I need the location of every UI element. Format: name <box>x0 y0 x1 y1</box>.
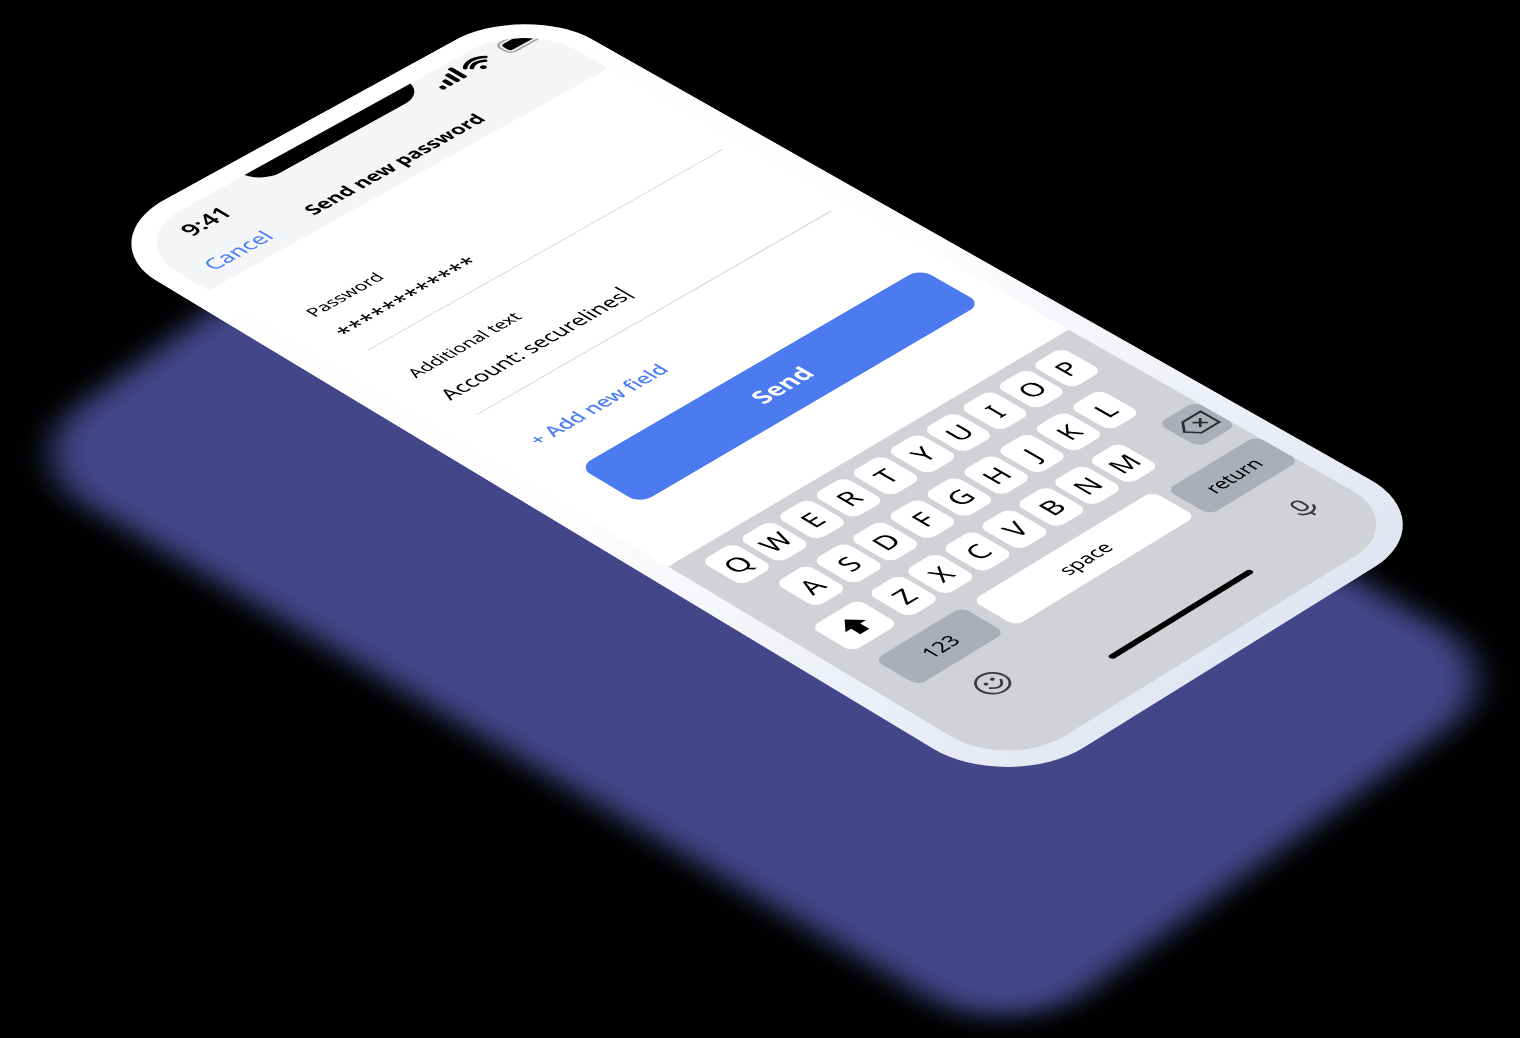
staticText: K <box>1046 419 1092 445</box>
button[interactable]: H <box>960 454 1033 497</box>
button[interactable]: Backspace <box>1157 401 1237 448</box>
staticText: O <box>1007 375 1057 404</box>
button[interactable]: X <box>903 552 977 596</box>
staticText: I <box>975 399 1015 423</box>
staticText: Y <box>901 441 945 467</box>
staticText: A <box>788 572 835 600</box>
button[interactable]: M <box>1087 442 1160 485</box>
button[interactable]: F <box>886 498 959 541</box>
staticText: 9:41 <box>171 201 240 240</box>
button[interactable]: Cancel <box>195 226 280 274</box>
button[interactable]: Send <box>579 268 982 504</box>
staticText: Account: securelines <box>431 287 635 404</box>
button[interactable]: R <box>812 476 885 519</box>
button[interactable]: W <box>738 520 811 564</box>
staticText: return <box>1197 453 1270 497</box>
staticText: space <box>1050 537 1120 579</box>
staticText: Q <box>713 549 763 579</box>
staticText: C <box>954 538 1001 566</box>
staticText: P <box>1044 355 1090 381</box>
staticText: M <box>1098 448 1151 479</box>
button[interactable]: Emoji <box>958 662 1027 704</box>
button[interactable]: E <box>775 498 849 541</box>
staticText: N <box>1063 471 1112 500</box>
staticText: G <box>936 483 984 511</box>
staticText: V <box>992 516 1038 543</box>
button[interactable]: V <box>978 507 1051 551</box>
staticText: Send new password <box>296 109 491 218</box>
button[interactable]: I <box>959 390 1031 432</box>
button[interactable]: K <box>1032 410 1105 453</box>
staticText: R <box>826 484 872 512</box>
button[interactable]: space <box>972 491 1196 626</box>
staticText: S <box>827 550 871 577</box>
staticText: + Add new field <box>520 359 675 449</box>
button[interactable]: Dictate <box>1267 486 1341 530</box>
button[interactable]: S <box>812 541 885 585</box>
button[interactable]: C <box>941 530 1014 573</box>
button[interactable]: O <box>995 368 1067 410</box>
button[interactable]: P <box>1031 347 1103 389</box>
button[interactable]: Z <box>867 574 941 618</box>
staticText: X <box>918 560 964 587</box>
button[interactable]: return <box>1166 436 1300 515</box>
staticText: Additional text <box>401 308 527 381</box>
button[interactable]: D <box>848 520 922 563</box>
button[interactable]: U <box>922 411 995 454</box>
button[interactable]: T <box>849 454 922 497</box>
staticText: Password <box>300 269 390 320</box>
staticText: ************ <box>327 252 487 342</box>
button[interactable]: Shift <box>810 599 899 652</box>
staticText: W <box>749 526 802 558</box>
button[interactable]: J <box>996 432 1068 475</box>
button[interactable]: L <box>1068 389 1141 431</box>
button[interactable]: B <box>1014 485 1088 529</box>
staticText: U <box>935 418 983 447</box>
staticText: F <box>901 506 945 532</box>
staticText: Cancel <box>195 226 280 274</box>
staticText: Z <box>881 582 927 610</box>
staticText: B <box>1028 493 1076 521</box>
staticText: J <box>1013 443 1052 465</box>
staticText: T <box>864 463 908 489</box>
button[interactable]: Q <box>700 542 774 586</box>
staticText: L <box>1084 397 1127 423</box>
button[interactable]: + Add new field <box>520 359 675 449</box>
button[interactable]: G <box>923 475 996 519</box>
staticText: 123 <box>913 630 967 662</box>
staticText: E <box>790 506 835 533</box>
staticText: Send <box>741 361 823 408</box>
button[interactable]: A <box>774 564 848 608</box>
button[interactable]: N <box>1050 464 1124 507</box>
button[interactable]: 123 <box>874 607 1006 686</box>
staticText: H <box>972 461 1021 490</box>
staticText: D <box>862 527 910 556</box>
other: Status icons <box>420 25 549 97</box>
button[interactable]: Y <box>886 432 959 475</box>
